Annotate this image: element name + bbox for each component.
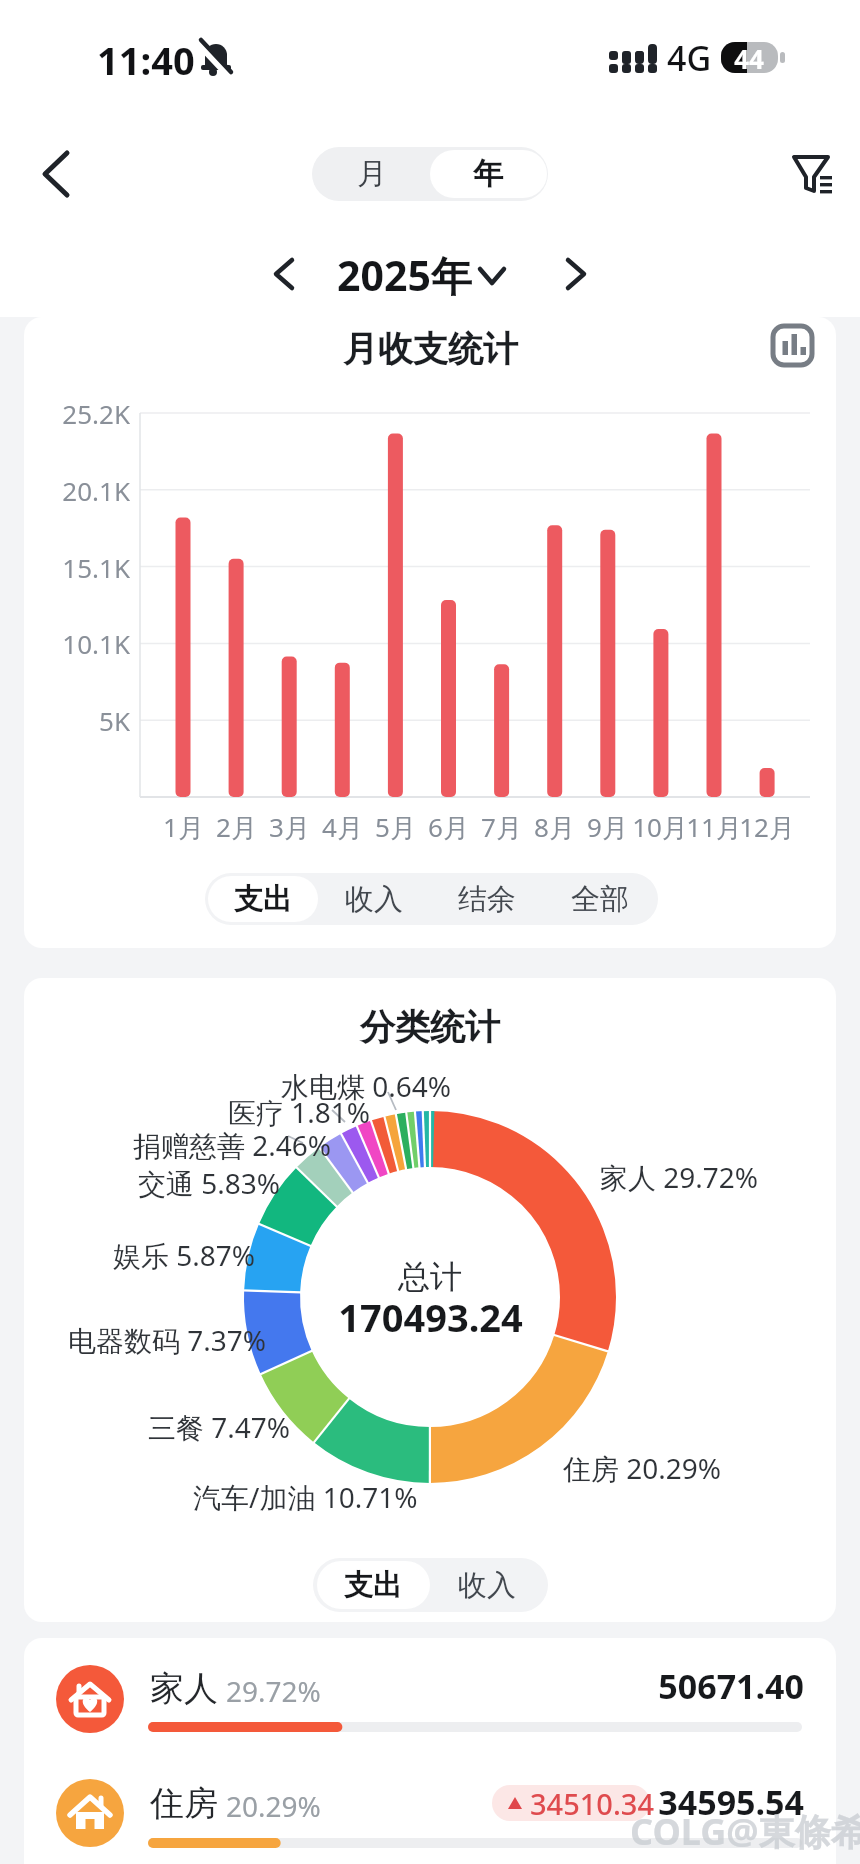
staticText: 6月	[428, 809, 469, 845]
button[interactable]	[317, 1561, 430, 1609]
staticText: 44	[734, 41, 764, 76]
staticText: 三餐 7.47%	[148, 1408, 291, 1446]
button[interactable]	[208, 876, 318, 922]
staticText: 1月	[163, 809, 204, 845]
staticText: 25.2K	[62, 396, 130, 431]
button[interactable]	[544, 873, 657, 925]
staticText: 结余	[458, 881, 516, 918]
staticText: 8月	[534, 809, 575, 845]
staticText: 15.1K	[62, 550, 130, 585]
button[interactable]	[260, 250, 308, 298]
staticText: 支出	[344, 1567, 402, 1604]
staticText: 34595.54	[658, 1779, 804, 1825]
button[interactable]	[40, 1650, 820, 1750]
staticText: 11:40	[97, 34, 195, 86]
staticText: 家人	[150, 1667, 218, 1710]
staticText: 20.29%	[226, 1787, 321, 1825]
staticText: 分类统计	[360, 1005, 500, 1049]
staticText: 水电煤 0.64%	[281, 1067, 452, 1105]
button[interactable]	[430, 150, 547, 198]
staticText: COLG@東條希	[630, 1807, 860, 1856]
staticText: 20.1K	[62, 473, 130, 508]
staticText: 10月	[632, 809, 688, 845]
staticText: 170493.24	[338, 1291, 523, 1343]
button[interactable]	[430, 1558, 545, 1612]
staticText: 7月	[481, 809, 522, 845]
staticText: 12月	[739, 809, 795, 845]
staticText: 月	[357, 155, 387, 193]
staticText: 4G	[667, 35, 712, 81]
staticText: 5K	[99, 703, 130, 738]
button[interactable]	[340, 248, 510, 302]
button[interactable]	[40, 1766, 820, 1864]
button[interactable]	[431, 873, 544, 925]
staticText: 全部	[571, 881, 629, 918]
button[interactable]	[315, 147, 431, 201]
staticText: 娱乐 5.87%	[113, 1236, 256, 1274]
staticText: 家人 29.72%	[600, 1158, 759, 1196]
staticText: 2月	[216, 809, 257, 845]
staticText: 4月	[322, 809, 363, 845]
staticText: 捐赠慈善 2.46%	[133, 1126, 332, 1164]
staticText: 3月	[269, 809, 310, 845]
staticText: 月收支统计	[343, 327, 518, 371]
staticText: 10.1K	[62, 626, 130, 661]
staticText: 医疗 1.81%	[228, 1093, 371, 1131]
staticText: 9月	[587, 809, 628, 845]
staticText: 住房 20.29%	[563, 1449, 722, 1487]
staticText: 交通 5.83%	[138, 1164, 281, 1202]
staticText: 2025年	[337, 247, 472, 303]
staticText: 收入	[458, 1567, 516, 1604]
button[interactable]	[786, 150, 840, 200]
staticText: 5月	[375, 809, 416, 845]
staticText: 支出	[234, 881, 292, 918]
staticText: 住房	[150, 1782, 218, 1825]
button[interactable]	[318, 873, 431, 925]
staticText: 29.72%	[226, 1672, 321, 1710]
staticText: 电器数码 7.37%	[68, 1321, 267, 1359]
button[interactable]	[30, 148, 82, 200]
staticText: 总计	[398, 1257, 462, 1297]
staticText: 年	[473, 155, 503, 193]
button[interactable]	[766, 320, 818, 372]
staticText: 11月	[686, 809, 742, 845]
button[interactable]	[552, 250, 600, 298]
staticText: 汽车/加油 10.71%	[193, 1478, 418, 1516]
staticText: 50671.40	[658, 1663, 804, 1709]
staticText: 34510.34	[530, 1784, 655, 1823]
staticText: 收入	[345, 881, 403, 918]
